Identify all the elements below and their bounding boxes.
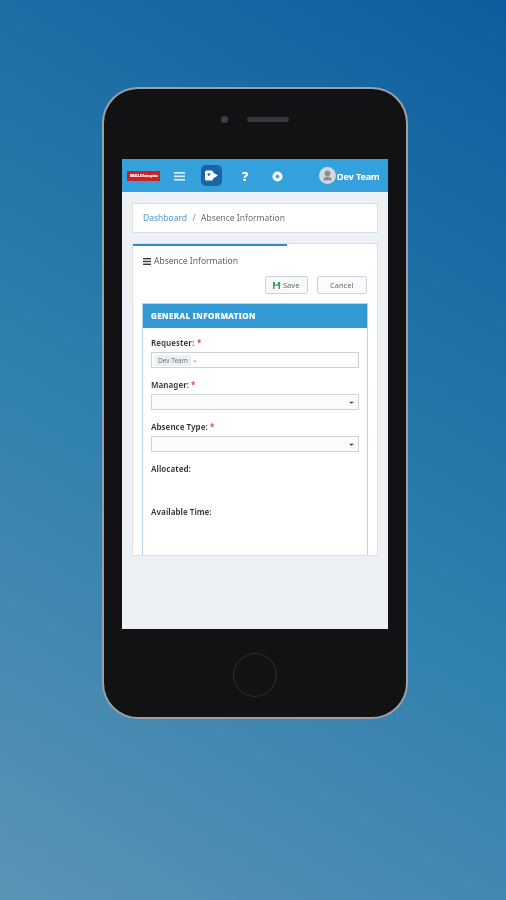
staticText: Cancel xyxy=(330,280,354,290)
staticText: / xyxy=(188,212,201,224)
button[interactable]: Dev Team account xyxy=(319,167,383,184)
button[interactable]: Cancel xyxy=(317,276,367,294)
staticText: * xyxy=(191,379,196,390)
button[interactable]: Application xyxy=(201,165,222,186)
staticText: Available Time: xyxy=(151,506,212,517)
button[interactable]: Save xyxy=(265,276,308,294)
staticText: Dev Team xyxy=(158,356,188,365)
button[interactable]: Dashboard xyxy=(143,212,188,224)
staticText: GENERAL INFORMATION xyxy=(151,310,256,321)
staticText: Dev Team xyxy=(337,170,380,182)
staticText: Allocated: xyxy=(151,463,191,474)
button[interactable]: Select option xyxy=(151,394,359,410)
staticText: × xyxy=(193,357,197,365)
button[interactable]: Dev Team xyxy=(151,352,359,368)
staticText: Save xyxy=(283,280,300,290)
button[interactable]: Menu xyxy=(169,166,189,186)
staticText: Requester: xyxy=(151,337,195,348)
staticText: Absence Information xyxy=(201,212,285,224)
staticText: Manager: xyxy=(151,379,189,390)
staticText: Absence Type: xyxy=(151,421,208,432)
button[interactable]: Home xyxy=(233,653,277,697)
staticText: Absence Information xyxy=(154,255,238,267)
staticText: ORACLE Enterprise xyxy=(130,174,158,178)
button[interactable]: Select option xyxy=(151,436,359,452)
staticText: ? xyxy=(242,167,249,185)
staticText: * xyxy=(210,421,215,432)
button[interactable]: Oracle logo xyxy=(127,171,160,181)
button[interactable]: Help xyxy=(236,167,254,185)
button[interactable]: Settings xyxy=(268,167,286,185)
staticText: * xyxy=(197,337,202,348)
